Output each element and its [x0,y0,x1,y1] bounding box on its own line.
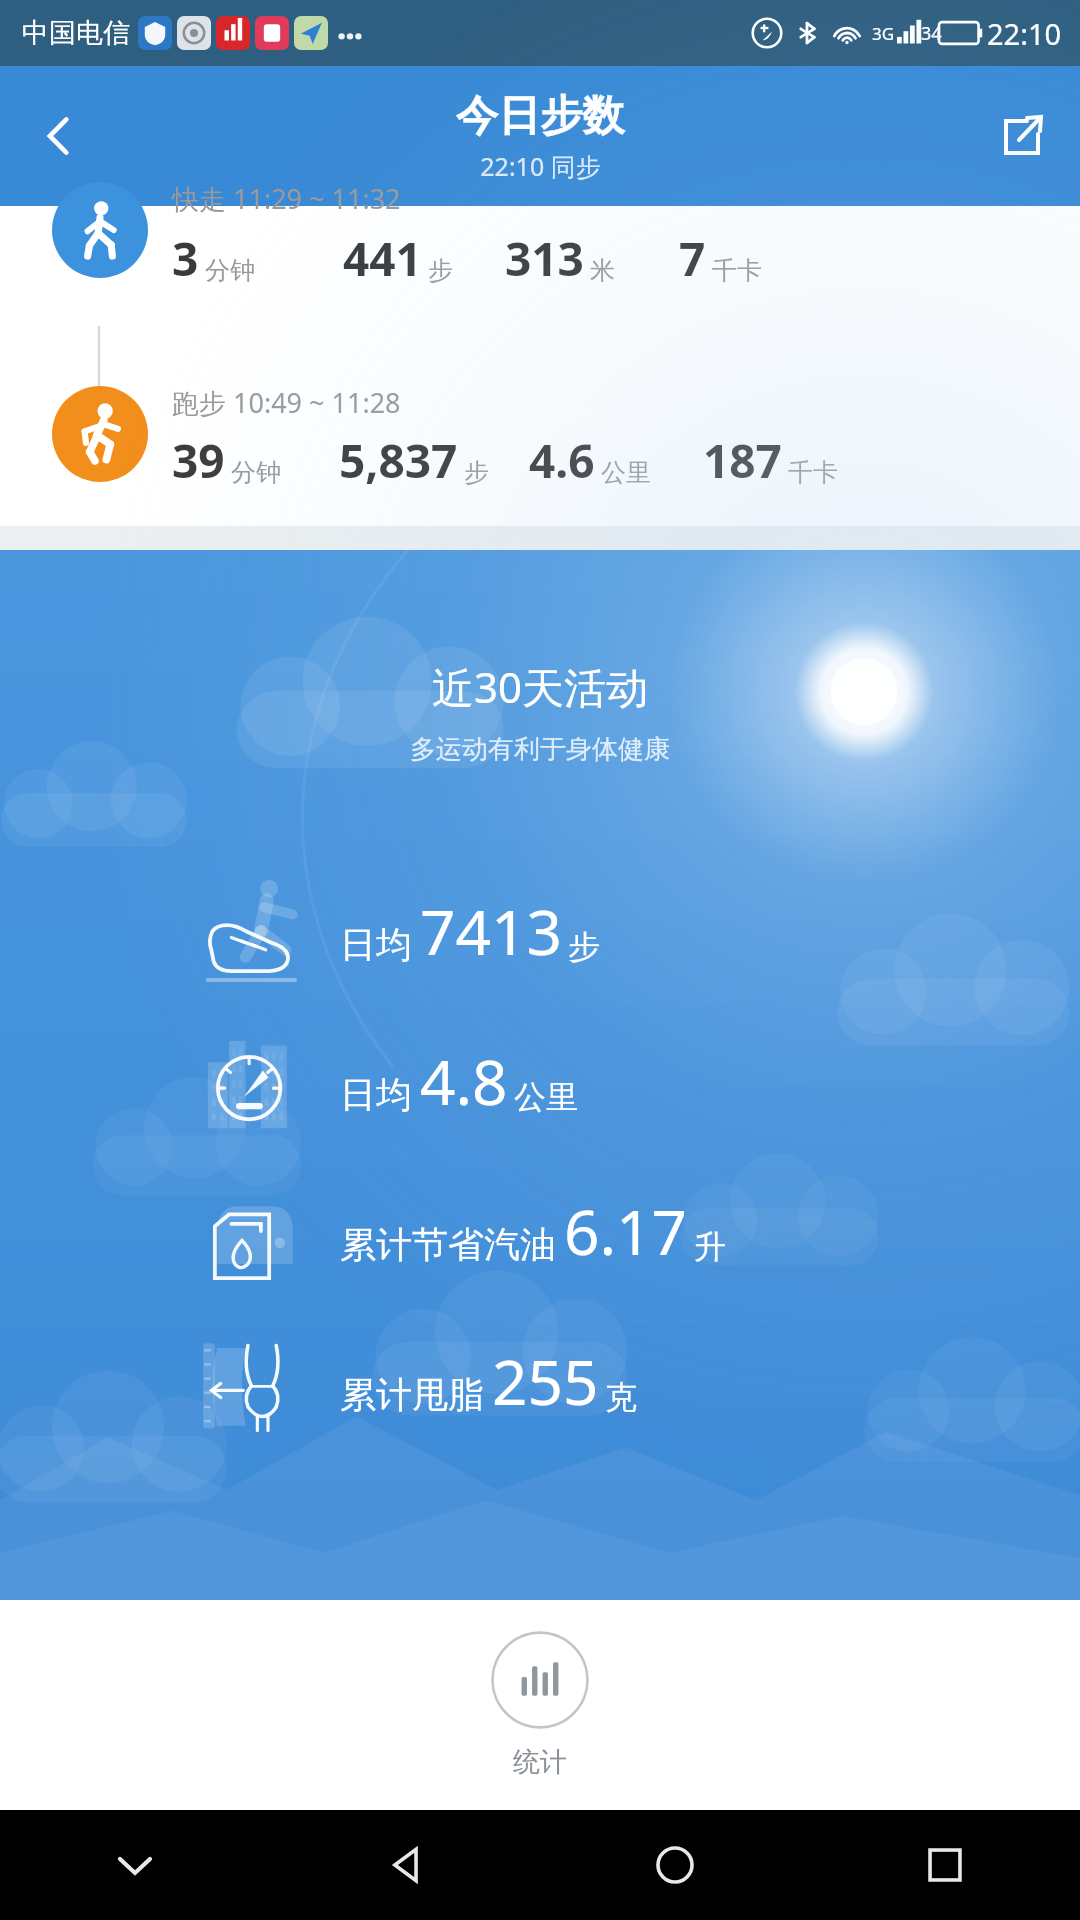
staticText: 3G [872,22,895,45]
staticText: 累计甩脂 [340,1372,484,1417]
staticText: 公里 [514,1077,578,1117]
staticText: 千卡 [788,457,838,488]
staticText: 187 [703,429,782,492]
staticText: 米 [590,255,615,286]
staticText: 4.6 [529,429,595,492]
staticText: 克 [605,1377,637,1417]
staticText: 统计 [513,1745,567,1779]
staticText: 441 [343,227,422,290]
button[interactable]: Hide [0,1810,270,1920]
staticText: 公里 [601,457,651,488]
button[interactable]: Recent apps [810,1810,1080,1920]
button[interactable]: 快走 11:29 ~ 11:32 [0,206,1080,356]
staticText: 日均 [340,1072,412,1117]
staticText: 累计节省汽油 [340,1222,556,1267]
staticText: 22:10 同步 [480,149,601,183]
staticText: 近30天活动 [0,658,1080,715]
staticText: 日均 [340,922,412,967]
staticText: 快走 11:29 ~ 11:32 [172,180,401,217]
button[interactable]: 日均 [0,872,1080,990]
button[interactable]: Back [270,1810,540,1920]
button[interactable]: 跑步 10:49 ~ 11:28 [0,376,1080,516]
staticText: 升 [694,1227,726,1267]
staticText: 7 [679,227,706,290]
staticText: 步 [428,255,453,286]
staticText: 313 [505,227,584,290]
staticText: 4.8 [420,1039,508,1123]
staticText: 39 [172,429,225,492]
staticText: 今日步数 [456,90,624,143]
staticText: 步 [568,927,600,967]
button[interactable]: 日均 [0,1022,1080,1140]
staticText: 分钟 [231,457,281,488]
button[interactable]: Home [540,1810,810,1920]
staticText: 千卡 [712,255,762,286]
button[interactable]: 累计节省汽油 [0,1172,1080,1290]
staticText: 34 [921,21,942,46]
staticText: 多运动有利于身体健康 [0,733,1080,766]
staticText: 7413 [420,889,562,973]
button[interactable]: Back [0,66,118,206]
staticText: 6.17 [564,1189,688,1273]
staticText: 22:10 [987,14,1062,53]
staticText: 5,837 [339,429,458,492]
staticText: 分钟 [205,255,255,286]
staticText: 3 [172,227,199,290]
staticText: 跑步 10:49 ~ 11:28 [172,384,401,421]
staticText: 255 [492,1339,599,1423]
staticText: 中国电信 [22,16,130,50]
button[interactable]: Share [962,66,1080,206]
staticText: 步 [464,457,489,488]
button[interactable]: 累计甩脂 [0,1322,1080,1440]
button[interactable]: 统计 [451,1623,629,1787]
